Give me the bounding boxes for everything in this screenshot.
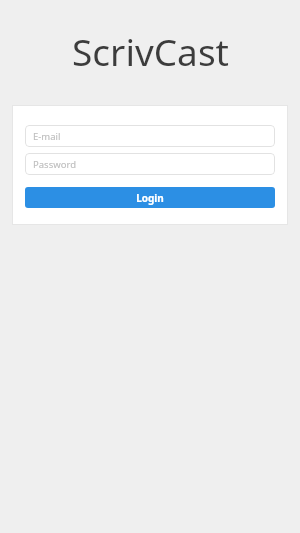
- staticText: E-mail: [33, 130, 61, 143]
- button[interactable]: Login: [25, 187, 275, 208]
- staticText: Login: [136, 191, 164, 205]
- button[interactable]: Password: [25, 153, 275, 175]
- staticText: ScrivCast: [72, 26, 229, 76]
- staticText: Password: [33, 158, 76, 171]
- button[interactable]: E-mail: [25, 125, 275, 147]
